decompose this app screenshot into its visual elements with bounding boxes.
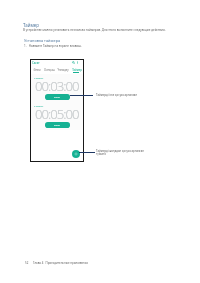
staticText: Установка таймера <box>24 38 61 43</box>
staticText: 00:05:00 <box>35 105 79 123</box>
staticText: Глава 4 Пригодительные приложения <box>33 261 88 265</box>
staticText: 52 <box>25 261 29 265</box>
staticText: Үнемдеу <box>57 68 69 72</box>
staticText: Бастау <box>54 124 61 127</box>
staticText: 3 минут <box>34 76 44 79</box>
button[interactable]: More options <box>76 61 79 64</box>
staticText: Таймер <box>72 68 82 72</box>
button[interactable]: Search <box>72 61 75 64</box>
staticText: Бастау <box>54 96 61 99</box>
staticText: 5 минут <box>34 104 44 107</box>
staticText: 1. Нажмите Таймер на экране клавиш. <box>24 44 82 48</box>
button[interactable]: Сағат <box>32 61 40 65</box>
staticText: Әлем <box>33 68 41 72</box>
button[interactable]: Оятқыш <box>42 68 56 76</box>
button[interactable]: Бастау <box>45 122 70 128</box>
staticText: Таймер <box>23 22 39 28</box>
button[interactable]: Бастау <box>45 94 70 100</box>
button[interactable]: Таймер <box>70 68 83 76</box>
staticText: Таймерді жаңадан қосуға арналған түймесі <box>96 149 145 156</box>
staticText: Оятқыш <box>44 68 55 72</box>
button[interactable]: Add timer <box>72 150 80 158</box>
staticText: В устройстве можно установить несколько … <box>23 28 166 32</box>
button[interactable]: Үнемдеу <box>56 68 70 76</box>
button[interactable]: Әлем <box>31 68 42 76</box>
staticText: Таймерді іске қосуға арналған <box>96 93 138 97</box>
staticText: 00:03:00 <box>35 77 79 95</box>
